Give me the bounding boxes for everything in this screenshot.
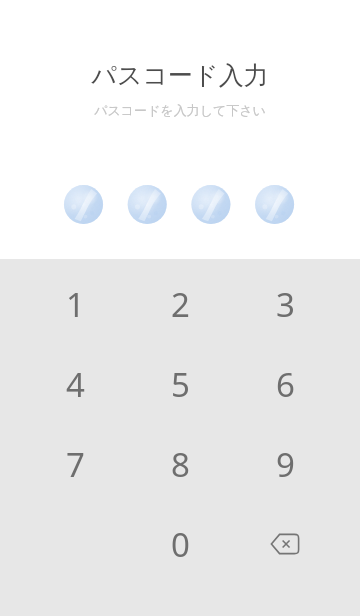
button[interactable]: 4: [25, 344, 125, 424]
staticText: 9: [276, 442, 295, 487]
staticText: パスコード入力: [91, 60, 269, 91]
staticText: 5: [171, 362, 190, 407]
staticText: 7: [66, 442, 85, 487]
staticText: 4: [66, 362, 85, 407]
button[interactable]: 5: [130, 344, 230, 424]
button[interactable]: 1: [25, 264, 125, 344]
button[interactable]: 0: [130, 504, 230, 584]
staticText: パスコードを入力して下さい: [94, 102, 266, 118]
button[interactable]: 8: [130, 424, 230, 504]
staticText: 1: [66, 282, 85, 327]
button[interactable]: 9: [235, 424, 335, 504]
button[interactable]: 2: [130, 264, 230, 344]
staticText: 0: [171, 522, 190, 567]
staticText: 8: [171, 442, 190, 487]
staticText: 3: [276, 282, 295, 327]
button[interactable]: Backspace: [235, 504, 335, 584]
staticText: 6: [276, 362, 295, 407]
staticText: 2: [171, 282, 190, 327]
button[interactable]: 3: [235, 264, 335, 344]
button[interactable]: 6: [235, 344, 335, 424]
button[interactable]: 7: [25, 424, 125, 504]
